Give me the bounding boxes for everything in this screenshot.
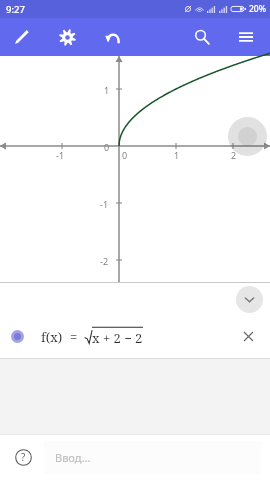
staticText: -1 <box>56 149 65 161</box>
button[interactable]: Search <box>188 23 216 51</box>
button[interactable]: Ввод… <box>44 441 261 474</box>
staticText: 1 <box>174 149 180 161</box>
staticText: -2 <box>100 255 109 267</box>
staticText: -1 <box>100 198 109 210</box>
button[interactable]: Collapse panel <box>236 286 263 313</box>
staticText: Ввод… <box>55 450 91 465</box>
button[interactable]: f(x) <box>0 314 270 358</box>
button[interactable]: Pencil <box>8 23 36 51</box>
button[interactable]: Settings <box>53 23 81 51</box>
staticText: 0 <box>122 149 128 161</box>
staticText: = <box>70 328 78 346</box>
staticText: 9:27 <box>6 3 25 16</box>
button[interactable]: Help <box>9 443 37 471</box>
button[interactable]: Undo <box>98 23 126 51</box>
staticText: f(x) <box>41 328 63 346</box>
staticText: 20% <box>249 3 266 15</box>
staticText: 0 <box>104 141 110 153</box>
button[interactable]: Menu <box>232 23 260 51</box>
staticText: 2 <box>231 149 237 161</box>
staticText: 1 <box>104 84 110 96</box>
button[interactable]: Delete function <box>237 325 259 347</box>
button[interactable]: Pan and zoom control <box>228 117 267 156</box>
staticText: ? <box>21 450 26 464</box>
staticText: x + 2 − 2 <box>92 329 143 347</box>
